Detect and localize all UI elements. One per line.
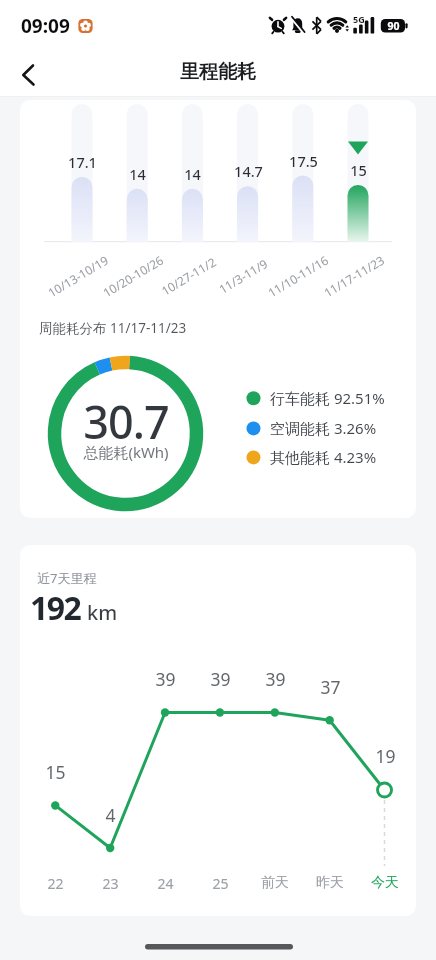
staticText: 10/20-10/26	[100, 252, 166, 300]
staticText: 22	[47, 874, 64, 893]
staticText: 昨天	[316, 874, 344, 892]
staticText: 行车能耗 92.51%	[270, 388, 385, 408]
staticText: 15	[350, 160, 367, 180]
staticText: 14	[184, 164, 201, 184]
staticText: 前天	[261, 874, 289, 892]
staticText: 24	[157, 874, 174, 893]
staticText: 周能耗分布 11/17-11/23	[39, 319, 187, 337]
staticText: 19	[375, 744, 396, 768]
staticText: 30.7	[83, 391, 169, 451]
staticText: 23	[102, 874, 119, 893]
staticText: 25	[212, 874, 229, 893]
staticText: 空调能耗 3.26%	[270, 418, 377, 438]
staticText: 39	[265, 667, 286, 691]
staticText: 39	[155, 667, 176, 691]
staticText: 17.5	[289, 151, 318, 171]
staticText: km	[87, 599, 118, 626]
staticText: 10/27-11/2	[158, 253, 219, 298]
button[interactable]	[10, 56, 46, 92]
staticText: 15	[45, 760, 66, 784]
staticText: 10/13-10/19	[45, 252, 111, 300]
staticText: 14.7	[234, 161, 263, 181]
staticText: 17.1	[68, 152, 97, 172]
staticText: 里程能耗	[180, 60, 256, 84]
staticText: 总能耗(kWh)	[83, 442, 169, 462]
staticText: 90	[387, 19, 400, 33]
staticText: 5G	[353, 13, 365, 25]
staticText: 192	[30, 586, 81, 630]
staticText: 37	[320, 675, 341, 699]
staticText: 11/10-11/16	[265, 252, 331, 300]
staticText: 近7天里程	[37, 569, 97, 587]
staticText: 其他能耗 4.23%	[270, 447, 377, 467]
staticText: 39	[210, 667, 231, 691]
staticText: 11/17-11/23	[321, 252, 387, 300]
staticText: 09:09	[21, 13, 70, 39]
staticText: 4	[105, 803, 116, 827]
staticText: 今天	[371, 874, 399, 892]
staticText: 11/3-11/9	[216, 255, 270, 297]
staticText: 14	[129, 164, 146, 184]
